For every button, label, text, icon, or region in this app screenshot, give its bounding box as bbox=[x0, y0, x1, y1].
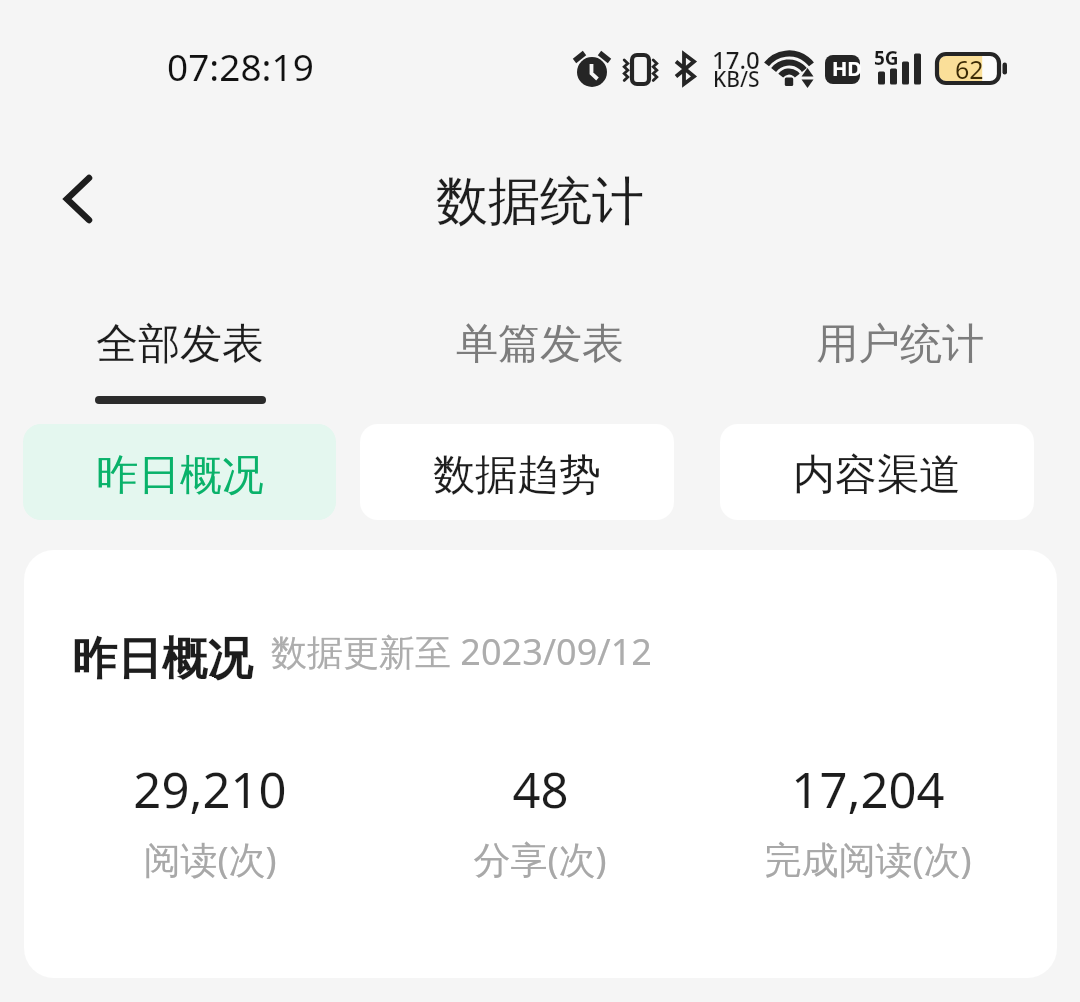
staticText: 单篇发表 bbox=[456, 318, 624, 371]
staticText: 昨日概况 bbox=[72, 631, 252, 688]
staticText: 数据更新至 2023/09/12 bbox=[271, 627, 652, 676]
staticText: 用户统计 bbox=[816, 318, 984, 371]
button[interactable]: 内容渠道 bbox=[720, 424, 1034, 520]
button[interactable]: 昨日概况 bbox=[23, 424, 336, 520]
staticText: HD bbox=[832, 55, 862, 82]
staticText: 07:28:19 bbox=[167, 41, 314, 91]
staticText: 阅读(次) bbox=[143, 833, 277, 884]
staticText: 全部发表 bbox=[96, 318, 264, 371]
staticText: 17,204 bbox=[791, 756, 945, 823]
staticText: KB/S bbox=[713, 65, 760, 94]
button[interactable]: 用户统计 bbox=[720, 318, 1080, 418]
staticText: 17.0 bbox=[712, 43, 760, 76]
staticText: 48 bbox=[512, 756, 569, 823]
staticText: 29,210 bbox=[133, 756, 287, 823]
staticText: 数据趋势 bbox=[433, 449, 601, 502]
button[interactable]: 全部发表 bbox=[0, 318, 360, 418]
staticText: 分享(次) bbox=[473, 833, 607, 884]
staticText: 昨日概况 bbox=[96, 449, 264, 502]
button[interactable]: Back bbox=[33, 154, 123, 244]
staticText: 完成阅读(次) bbox=[764, 833, 972, 884]
staticText: 62 bbox=[955, 52, 984, 86]
button[interactable]: 单篇发表 bbox=[360, 318, 720, 418]
staticText: 5G bbox=[874, 45, 899, 71]
button[interactable]: 数据趋势 bbox=[360, 424, 674, 520]
staticText: 内容渠道 bbox=[793, 449, 961, 502]
staticText: 数据统计 bbox=[436, 169, 644, 235]
